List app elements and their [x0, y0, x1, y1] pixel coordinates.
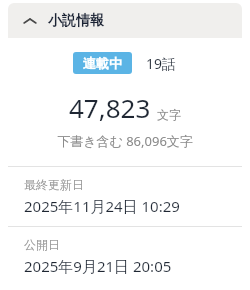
staticText: 2025年9月21日 20:05 — [24, 256, 172, 274]
button[interactable]: 最終更新日 — [8, 167, 242, 226]
staticText: 2025年11月24日 10:29 — [24, 196, 180, 216]
staticText: 公開日 — [24, 237, 60, 252]
staticText: 最終更新日 — [24, 177, 84, 192]
staticText: 文字 — [157, 107, 181, 122]
staticText: 連載中 — [83, 55, 122, 71]
staticText: 19話 — [146, 54, 177, 73]
staticText: 47,823 — [69, 90, 151, 125]
button[interactable]: 公開日 — [8, 227, 242, 284]
button[interactable]: Collapse — [8, 3, 242, 38]
staticText: 下書き含む 86,096文字 — [57, 132, 193, 150]
button[interactable]: 連載中 — [73, 52, 132, 74]
staticText: 小説情報 — [48, 12, 104, 30]
other: Collapse — [20, 11, 40, 31]
